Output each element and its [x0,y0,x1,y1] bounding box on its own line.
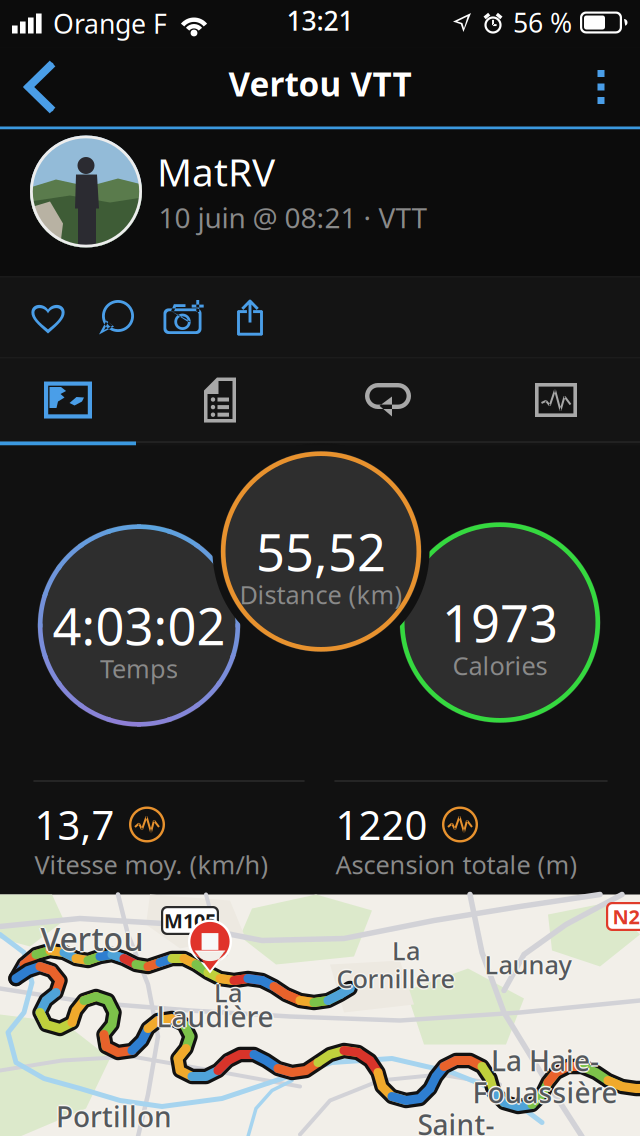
staticText: Fouassière [472,1072,617,1110]
staticText: Vertou [40,917,143,960]
staticText: Vertou [40,916,143,958]
staticText: La Haie- [491,1040,599,1078]
staticText: Calories [452,649,547,682]
staticText: Saint- [417,1104,494,1136]
staticText: Cornillère [336,962,455,995]
staticText: Saint- [417,1107,494,1136]
button[interactable]: Laps [304,358,472,441]
staticText: Fouassière [471,1074,616,1111]
button[interactable]: More options [570,47,632,126]
staticText: Saint- [417,1106,494,1136]
staticText: La [392,935,420,969]
button[interactable]: Back [8,47,70,126]
staticText: Saint- [419,1106,496,1136]
staticText: La [214,976,242,1009]
button[interactable]: Like [13,286,83,348]
staticText: Laudière [156,998,273,1035]
staticText: Laudière [155,998,272,1035]
button[interactable]: Share [217,286,283,348]
staticText: Cornillère [336,960,455,994]
staticText: La Haie- [492,1042,600,1079]
staticText: Orange F [53,6,167,41]
staticText: Saint- [416,1106,493,1136]
button[interactable]: Graphs [472,358,640,441]
staticText: Launay [484,948,571,981]
staticText: Launay [483,948,570,981]
staticText: La [214,974,242,1008]
staticText: Vertou [40,919,143,961]
staticText: Vertou [42,917,145,960]
staticText: La Haie- [491,1042,599,1079]
staticText: La [214,977,242,1011]
staticText: 10 juin @ 08:21 · VTT [158,199,427,236]
staticText: La Haie- [489,1042,597,1079]
staticText: La [212,976,240,1009]
staticText: La [393,934,421,967]
staticText: Launay [486,948,573,981]
staticText: 55,52 [256,518,386,585]
staticText: Portillon [57,1098,173,1135]
staticText: Temps [100,652,178,685]
staticText: 1220 [335,798,427,851]
staticText: 4:03:02 [52,592,225,659]
staticText: Launay [484,946,571,980]
button[interactable]: Summary [136,358,304,441]
staticText: Launay [484,949,571,983]
staticText: 13,7 [34,798,114,851]
staticText: Distance (km) [239,578,402,611]
button[interactable]: Map [0,358,136,441]
staticText: 1973 [442,589,558,656]
staticText: La [392,932,420,966]
staticText: Fouassière [472,1074,617,1111]
staticText: Cornillère [336,963,455,997]
staticText: Vertou [39,917,142,960]
staticText: N2 [612,903,639,930]
staticText: 13:21 [286,3,353,38]
staticText: Portillon [56,1098,172,1135]
staticText: La [215,976,243,1009]
staticText: Laudière [158,998,275,1035]
staticText: Laudière [156,999,273,1037]
button[interactable]: Add photo [151,286,217,348]
staticText: MatRV [157,146,275,197]
staticText: Cornillère [335,962,454,995]
staticText: La Haie- [491,1043,599,1081]
staticText: 56 % [513,5,572,40]
staticText: Portillon [56,1099,172,1136]
staticText: Fouassière [472,1075,617,1113]
button[interactable]: Comment [83,286,151,348]
staticText: Vertou VTT [228,61,411,106]
staticText: M105 [164,907,216,934]
staticText: Portillon [56,1096,172,1134]
staticText: Laudière [156,996,273,1034]
staticText: La [390,934,418,967]
staticText: Cornillère [338,962,457,995]
staticText: Ascension totale (m) [335,848,577,881]
staticText: La [392,934,420,967]
staticText: Vitesse moy. (km/h) [34,848,268,881]
staticText: Portillon [54,1098,170,1135]
staticText: Fouassière [474,1074,619,1111]
